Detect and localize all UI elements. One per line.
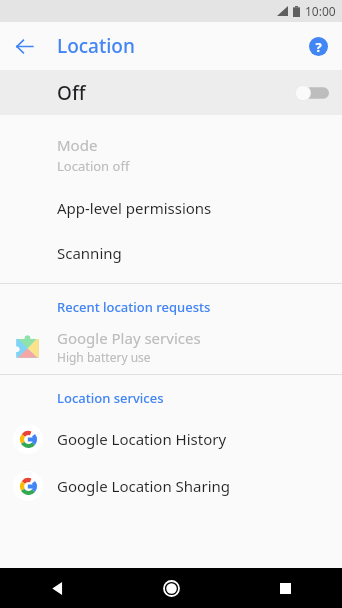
staticText: Location off <box>57 157 130 175</box>
button[interactable]: Scanning <box>0 230 342 275</box>
staticText: Scanning <box>57 243 122 263</box>
staticText: Google Location History <box>57 429 227 449</box>
staticText: Mode <box>57 135 98 155</box>
button[interactable]: Home <box>114 568 228 608</box>
staticText: Off <box>57 80 86 106</box>
staticText: Google Location Sharing <box>57 476 231 496</box>
button[interactable]: Google Location Sharing <box>0 462 342 509</box>
button[interactable]: Mode <box>0 125 342 185</box>
button[interactable]: Back <box>0 568 114 608</box>
button[interactable]: Off <box>0 70 342 115</box>
staticText: Google Play services <box>57 328 201 348</box>
staticText: Recent location requests <box>57 298 211 316</box>
staticText: Location services <box>57 389 164 407</box>
staticText: ? <box>315 38 322 56</box>
button[interactable]: Recent apps <box>228 568 342 608</box>
button[interactable]: App-level permissions <box>0 185 342 230</box>
staticText: 10:00 <box>305 3 336 19</box>
button[interactable]: Help <box>300 28 336 64</box>
staticText: High battery use <box>57 349 151 365</box>
button[interactable]: Google Location History <box>0 415 342 462</box>
button[interactable]: Google Play services <box>0 324 342 368</box>
staticText: App-level permissions <box>57 198 212 218</box>
button[interactable]: Back <box>4 26 44 66</box>
staticText: Location <box>57 33 135 59</box>
